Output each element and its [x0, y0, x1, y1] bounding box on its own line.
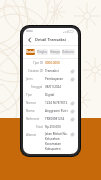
button[interactable]: Catatan ID	[26, 67, 75, 75]
staticText: Transaksi	[45, 69, 59, 73]
button[interactable]: Total	[26, 123, 75, 131]
button[interactable]: Referensi Transaksi	[26, 115, 75, 123]
staticText: Kabupaten Bogor	[45, 147, 70, 151]
button[interactable]: Detail	[26, 49, 35, 55]
button[interactable]: Dokumen	[62, 49, 75, 55]
button[interactable]: Ringkasan	[37, 49, 48, 55]
staticText: Catatan ID	[28, 69, 43, 73]
staticText: 0000-0000	[45, 61, 60, 65]
staticText: Jalan Melati No. 12,	[45, 132, 70, 136]
button[interactable]: Tipe ID	[26, 59, 75, 67]
button[interactable]: Tipe Transaksi	[26, 91, 75, 99]
staticText: TRX00981234	[45, 117, 65, 121]
button[interactable]: Copy	[70, 77, 75, 82]
button[interactable]: Copy	[70, 69, 75, 74]
staticText: 1234 5678 9012	[45, 101, 68, 105]
button[interactable]: Copy	[70, 117, 75, 122]
staticText: Detail	[26, 50, 35, 54]
staticText: Tanggal	[31, 85, 43, 89]
button[interactable]: Jenis Layanan	[26, 75, 75, 83]
staticText: Kelurahan Sukamaju,	[45, 137, 70, 141]
staticText: Ringkasan	[37, 50, 48, 54]
button[interactable]: Alamat Pengirim	[26, 132, 75, 152]
staticText: Dokumen	[62, 50, 75, 54]
staticText: Nama Penerima	[26, 109, 43, 113]
staticText: Alamat Pengirim	[26, 133, 43, 137]
button[interactable]: Copy	[70, 132, 75, 137]
button[interactable]: Tanggal	[26, 83, 75, 91]
staticText: Kecamatan Cibinong,	[45, 142, 70, 146]
staticText: Referensi Transaksi	[26, 117, 43, 121]
staticText: Total	[36, 125, 43, 129]
button[interactable]: Back	[26, 36, 34, 44]
staticText: Rp 250.000	[45, 125, 61, 129]
staticText: Jenis Layanan	[26, 77, 43, 81]
button[interactable]: Nama Penerima	[26, 107, 75, 115]
staticText: Anggraeni Putri	[45, 109, 68, 113]
staticText: Pembayaran Tagihan	[45, 77, 70, 81]
staticText: Riwayat	[50, 50, 60, 54]
button[interactable]: Copy	[70, 109, 75, 114]
button[interactable]: Nomor Rekening	[26, 99, 75, 107]
button[interactable]: Copy	[70, 101, 75, 106]
staticText: Nomor Rekening	[26, 101, 43, 105]
staticText: Tipe Transaksi	[26, 93, 43, 97]
staticText: 08/01/2024	[45, 85, 62, 89]
staticText: Tipe ID	[33, 61, 43, 65]
staticText: Digital	[45, 93, 55, 97]
button[interactable]: Riwayat	[50, 49, 60, 55]
staticText: Detail Transaksi	[35, 37, 66, 42]
